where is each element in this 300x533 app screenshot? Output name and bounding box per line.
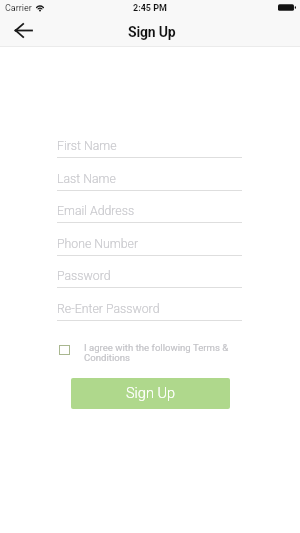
- button[interactable]: Last Name: [57, 159, 242, 191]
- button[interactable]: Sign Up: [71, 378, 230, 409]
- button[interactable]: First Name: [57, 126, 242, 158]
- staticText: Phone Number: [57, 237, 139, 251]
- staticText: Re-Enter Password: [57, 302, 160, 316]
- button[interactable]: I agree with the following Terms & Condi…: [59, 342, 231, 363]
- staticText: Carrier: [5, 3, 32, 14]
- staticText: First Name: [57, 139, 117, 153]
- button[interactable]: Phone Number: [57, 224, 242, 256]
- button[interactable]: Back: [8, 17, 38, 43]
- staticText: Sign Up: [128, 24, 176, 40]
- button[interactable]: Password: [57, 256, 242, 288]
- staticText: Sign Up: [126, 385, 175, 402]
- staticText: I agree with the following Terms & Condi…: [84, 342, 231, 363]
- staticText: Password: [57, 269, 111, 283]
- button[interactable]: Re-Enter Password: [57, 289, 242, 321]
- staticText: Email Address: [57, 204, 135, 218]
- button[interactable]: Email Address: [57, 191, 242, 223]
- staticText: 2:45 PM: [133, 3, 167, 14]
- staticText: Last Name: [57, 172, 116, 186]
